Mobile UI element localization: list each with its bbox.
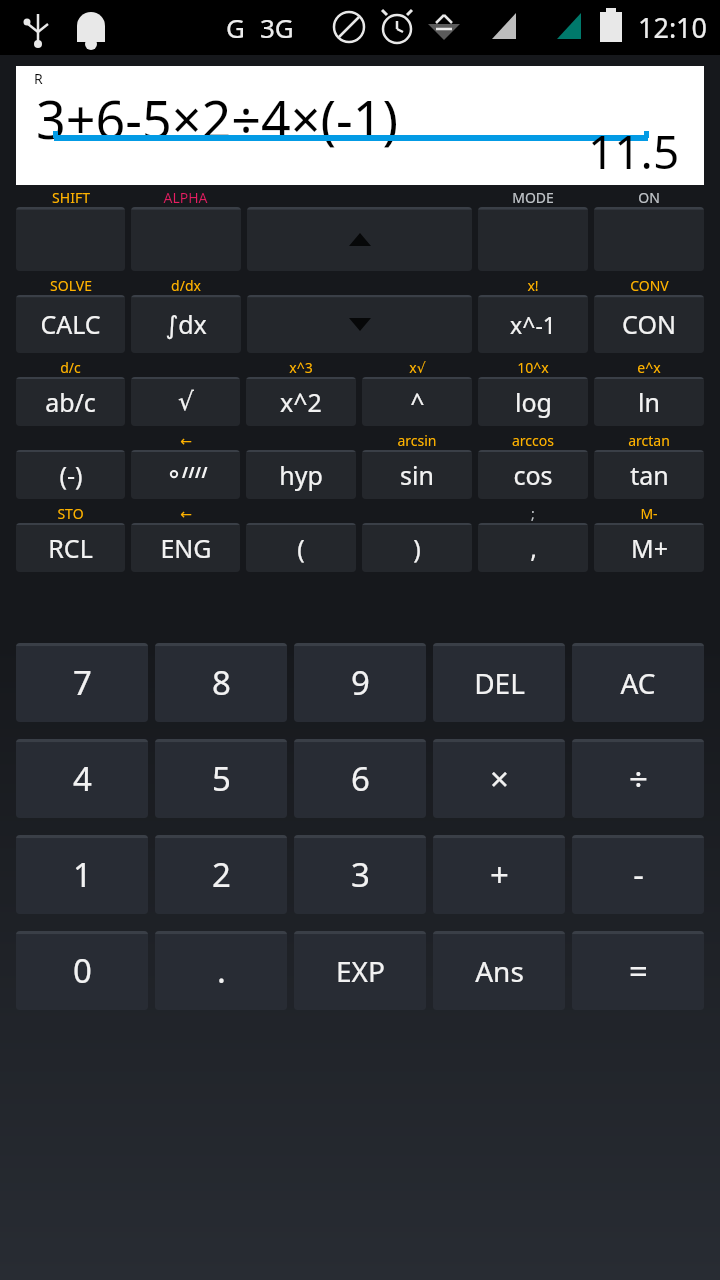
staticText: ab/c	[45, 385, 96, 419]
staticText: +	[490, 852, 509, 897]
button[interactable]: √	[131, 377, 240, 426]
staticText: .	[217, 948, 226, 993]
button[interactable]: sin	[362, 450, 472, 499]
staticText: ^	[410, 385, 425, 419]
button[interactable]: 4	[16, 739, 148, 818]
button[interactable]: 9	[294, 643, 426, 722]
staticText: 11.5	[588, 120, 680, 183]
button[interactable]: key	[16, 207, 125, 271]
staticText: ON	[638, 188, 660, 207]
staticText: sin	[400, 458, 434, 492]
button[interactable]: Up	[247, 207, 472, 271]
button[interactable]: -	[572, 835, 704, 914]
staticText: 1	[73, 852, 92, 897]
button[interactable]: CON	[594, 295, 704, 353]
button[interactable]: 7	[16, 643, 148, 722]
button[interactable]: +	[433, 835, 565, 914]
button[interactable]: AC	[572, 643, 704, 722]
staticText: =	[629, 948, 648, 993]
button[interactable]: ÷	[572, 739, 704, 818]
staticText: tan	[630, 458, 669, 492]
staticText: STO	[57, 504, 84, 523]
button[interactable]: log	[478, 377, 588, 426]
button[interactable]: RCL	[16, 523, 125, 572]
staticText: d/c	[60, 358, 81, 377]
button[interactable]: ,	[478, 523, 588, 572]
staticText: 0	[73, 948, 92, 993]
button[interactable]: key	[594, 207, 704, 271]
button[interactable]: (-)	[16, 450, 125, 499]
button[interactable]: (	[246, 523, 356, 572]
button[interactable]: 1	[16, 835, 148, 914]
staticText: CON	[622, 307, 676, 341]
staticText: ÷	[629, 756, 648, 801]
staticText: SHIFT	[52, 188, 90, 207]
staticText: d/dx	[171, 276, 201, 295]
button[interactable]: Down	[247, 295, 472, 353]
staticText: arccos	[512, 431, 554, 450]
button[interactable]: key	[131, 207, 241, 271]
staticText: x√	[409, 358, 426, 377]
button[interactable]: )	[362, 523, 472, 572]
button[interactable]: DEL	[433, 643, 565, 722]
staticText: M+	[631, 531, 668, 565]
staticText: 12:10	[638, 9, 708, 46]
staticText: 3+6-5×2÷4×(-1)	[36, 83, 399, 154]
button[interactable]: Ans	[433, 931, 565, 1010]
staticText: 10^x	[517, 358, 549, 377]
button[interactable]: M+	[594, 523, 704, 572]
button[interactable]: hyp	[246, 450, 356, 499]
button[interactable]: ^	[362, 377, 472, 426]
staticText: ALPHA	[163, 188, 208, 207]
staticText: hyp	[279, 458, 323, 492]
staticText: CALC	[40, 307, 101, 341]
staticText: 9	[351, 660, 370, 705]
staticText: ln	[638, 385, 660, 419]
staticText: x^-1	[510, 309, 556, 340]
button[interactable]: EXP	[294, 931, 426, 1010]
staticText: x^2	[280, 385, 322, 419]
staticText: SOLVE	[50, 276, 92, 295]
button[interactable]: key	[478, 207, 588, 271]
button[interactable]: 8	[155, 643, 287, 722]
button[interactable]: x^2	[246, 377, 356, 426]
button[interactable]: ENG	[131, 523, 240, 572]
button[interactable]: ×	[433, 739, 565, 818]
staticText: ×	[490, 756, 509, 801]
staticText: 5	[212, 756, 231, 801]
staticText: 8	[212, 660, 231, 705]
button[interactable]: tan	[594, 450, 704, 499]
button[interactable]: 0	[16, 931, 148, 1010]
button[interactable]: .	[155, 931, 287, 1010]
button[interactable]: ln	[594, 377, 704, 426]
button[interactable]: x^-1	[478, 295, 588, 353]
staticText: ENG	[160, 531, 212, 565]
staticText: 3G	[260, 10, 294, 45]
button[interactable]: ∫dx	[131, 295, 241, 353]
staticText: 2	[212, 852, 231, 897]
staticText: MODE	[512, 188, 554, 207]
button[interactable]: 2	[155, 835, 287, 914]
button[interactable]: Degrees minutes seconds	[131, 450, 240, 499]
staticText: ←	[180, 506, 192, 522]
staticText: ,	[530, 531, 537, 565]
staticText: (-)	[59, 458, 83, 492]
button[interactable]: 6	[294, 739, 426, 818]
button[interactable]: CALC	[16, 295, 125, 353]
staticText: 3	[351, 852, 370, 897]
staticText: cos	[513, 458, 553, 492]
staticText: 4	[73, 756, 92, 801]
staticText: EXP	[336, 952, 385, 990]
staticText: arctan	[628, 431, 670, 450]
button[interactable]: 5	[155, 739, 287, 818]
button[interactable]: 3	[294, 835, 426, 914]
staticText: x^3	[289, 358, 313, 377]
staticText: ←	[180, 433, 192, 449]
button[interactable]: =	[572, 931, 704, 1010]
staticText: M-	[640, 504, 658, 523]
button[interactable]: cos	[478, 450, 588, 499]
staticText: ∫dx	[165, 307, 207, 341]
staticText: log	[515, 385, 552, 419]
button[interactable]: ab/c	[16, 377, 125, 426]
staticText: R	[34, 69, 43, 88]
